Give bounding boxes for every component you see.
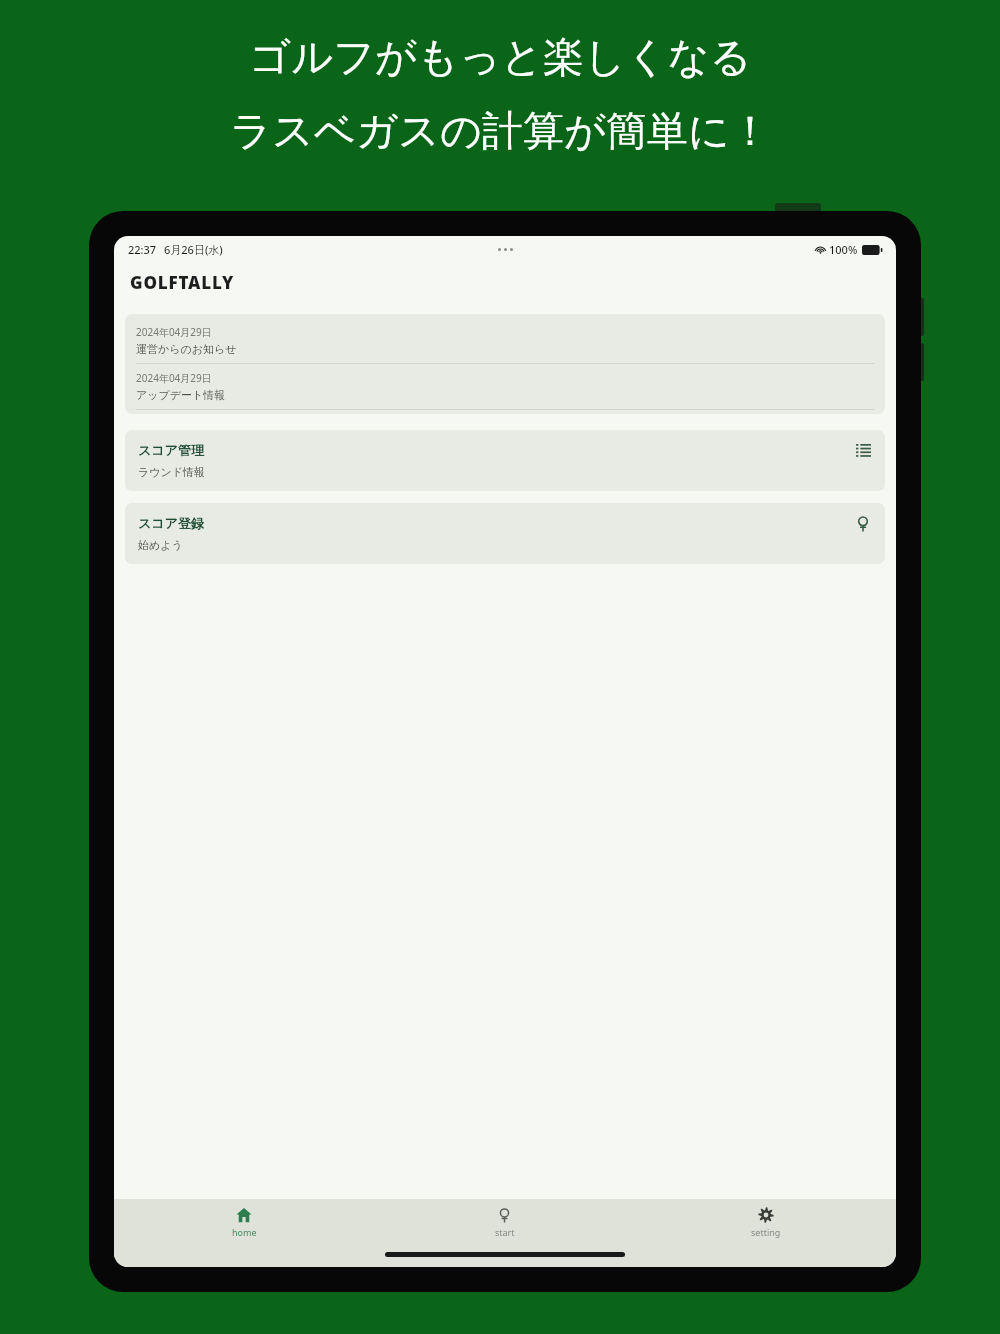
button[interactable]: start [374,1199,635,1246]
staticText: スコア管理 [138,442,204,458]
staticText: GOLFTALLY [130,271,235,294]
button[interactable]: スコア登録 [125,503,885,564]
button[interactable]: setting [635,1199,896,1246]
button[interactable]: 2024年04月29日 [136,364,874,409]
staticText: 100% [829,242,858,257]
staticText: 2024年04月29日 [136,325,212,339]
staticText: ラウンド情報 [138,465,206,479]
staticText: スコア登録 [138,515,204,531]
staticText: 2024年04月29日 [136,371,212,385]
button[interactable]: 2024年04月29日 [136,318,874,363]
staticText: 運営からのお知らせ [136,342,237,356]
button[interactable]: スコア管理 [125,430,885,491]
staticText: start [495,1226,515,1238]
staticText: setting [751,1226,781,1238]
staticText: ゴルフがもっと楽しくなる [249,32,752,84]
staticText: home [232,1226,257,1238]
staticText: ラスベガスの計算が簡単に！ [230,106,771,158]
button[interactable]: home [114,1199,374,1246]
staticText: 始めよう [138,538,183,552]
staticText: アップデート情報 [136,388,226,402]
staticText: 22:37 [128,242,157,257]
staticText: 6月26日(水) [164,242,223,257]
